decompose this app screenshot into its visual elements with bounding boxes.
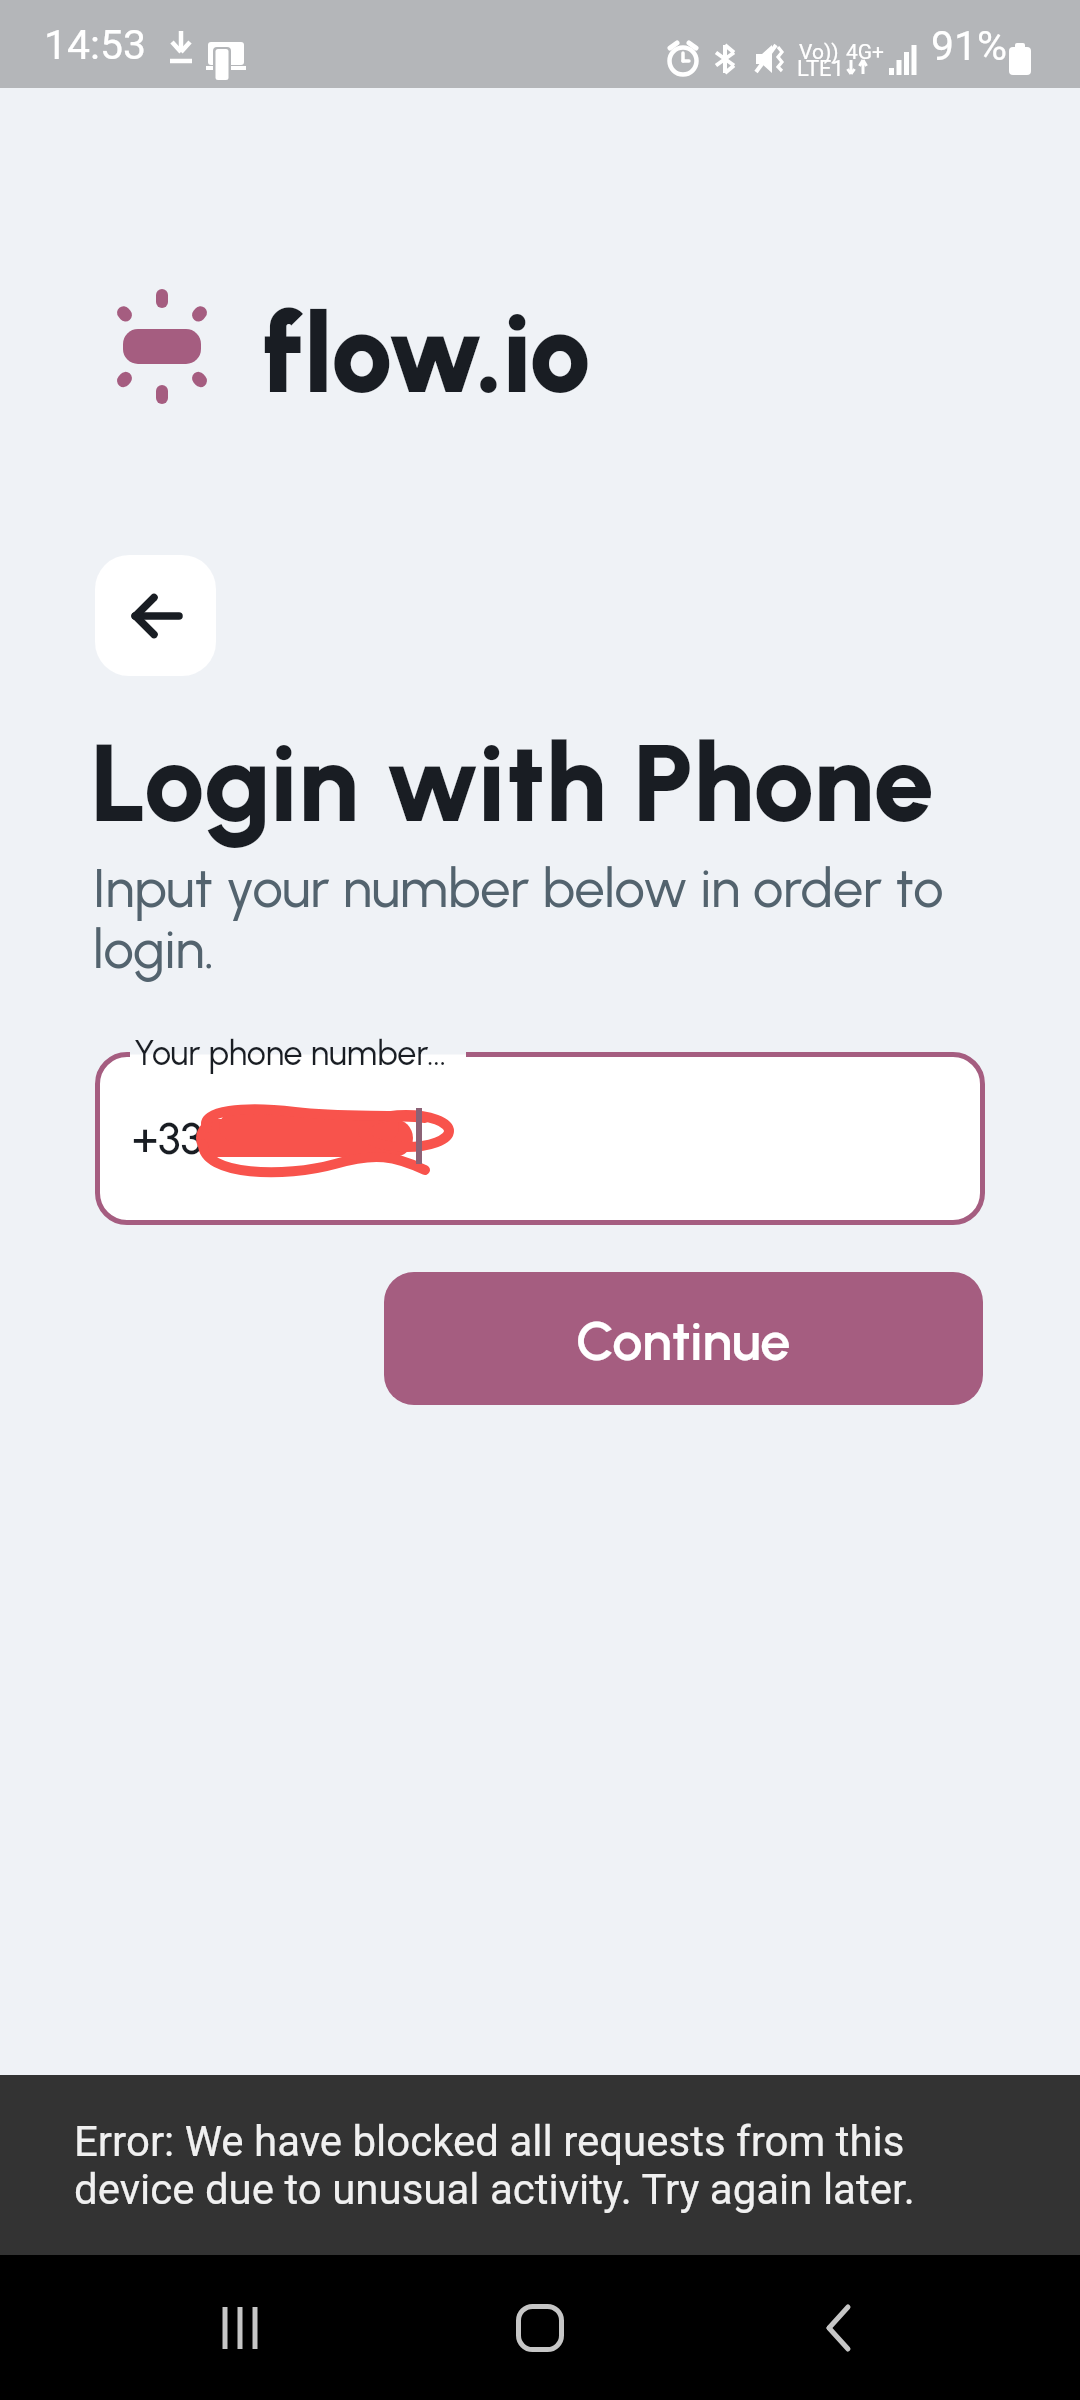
staticText: LTE1 (797, 56, 844, 82)
staticText: Input your number below in order to logi… (93, 856, 1013, 981)
staticText: +33 (132, 1111, 203, 1165)
button[interactable]: Back (775, 2255, 905, 2400)
staticText: 14:53 (44, 21, 147, 69)
staticText: Login with Phone (90, 717, 935, 848)
button[interactable]: Continue (384, 1272, 983, 1405)
staticText: Vo)) (799, 40, 839, 65)
staticText: Continue (576, 1309, 791, 1374)
button[interactable]: Back (95, 555, 216, 676)
staticText: Error: We have blocked all requests from… (74, 2117, 974, 2214)
staticText: Your phone number... (134, 1033, 447, 1074)
staticText: 4G+ (846, 40, 885, 65)
button[interactable]: Home (475, 2263, 605, 2393)
staticText: flow.io (262, 287, 590, 419)
button[interactable]: Recent apps (175, 2255, 305, 2400)
staticText: 91% (931, 22, 1008, 70)
